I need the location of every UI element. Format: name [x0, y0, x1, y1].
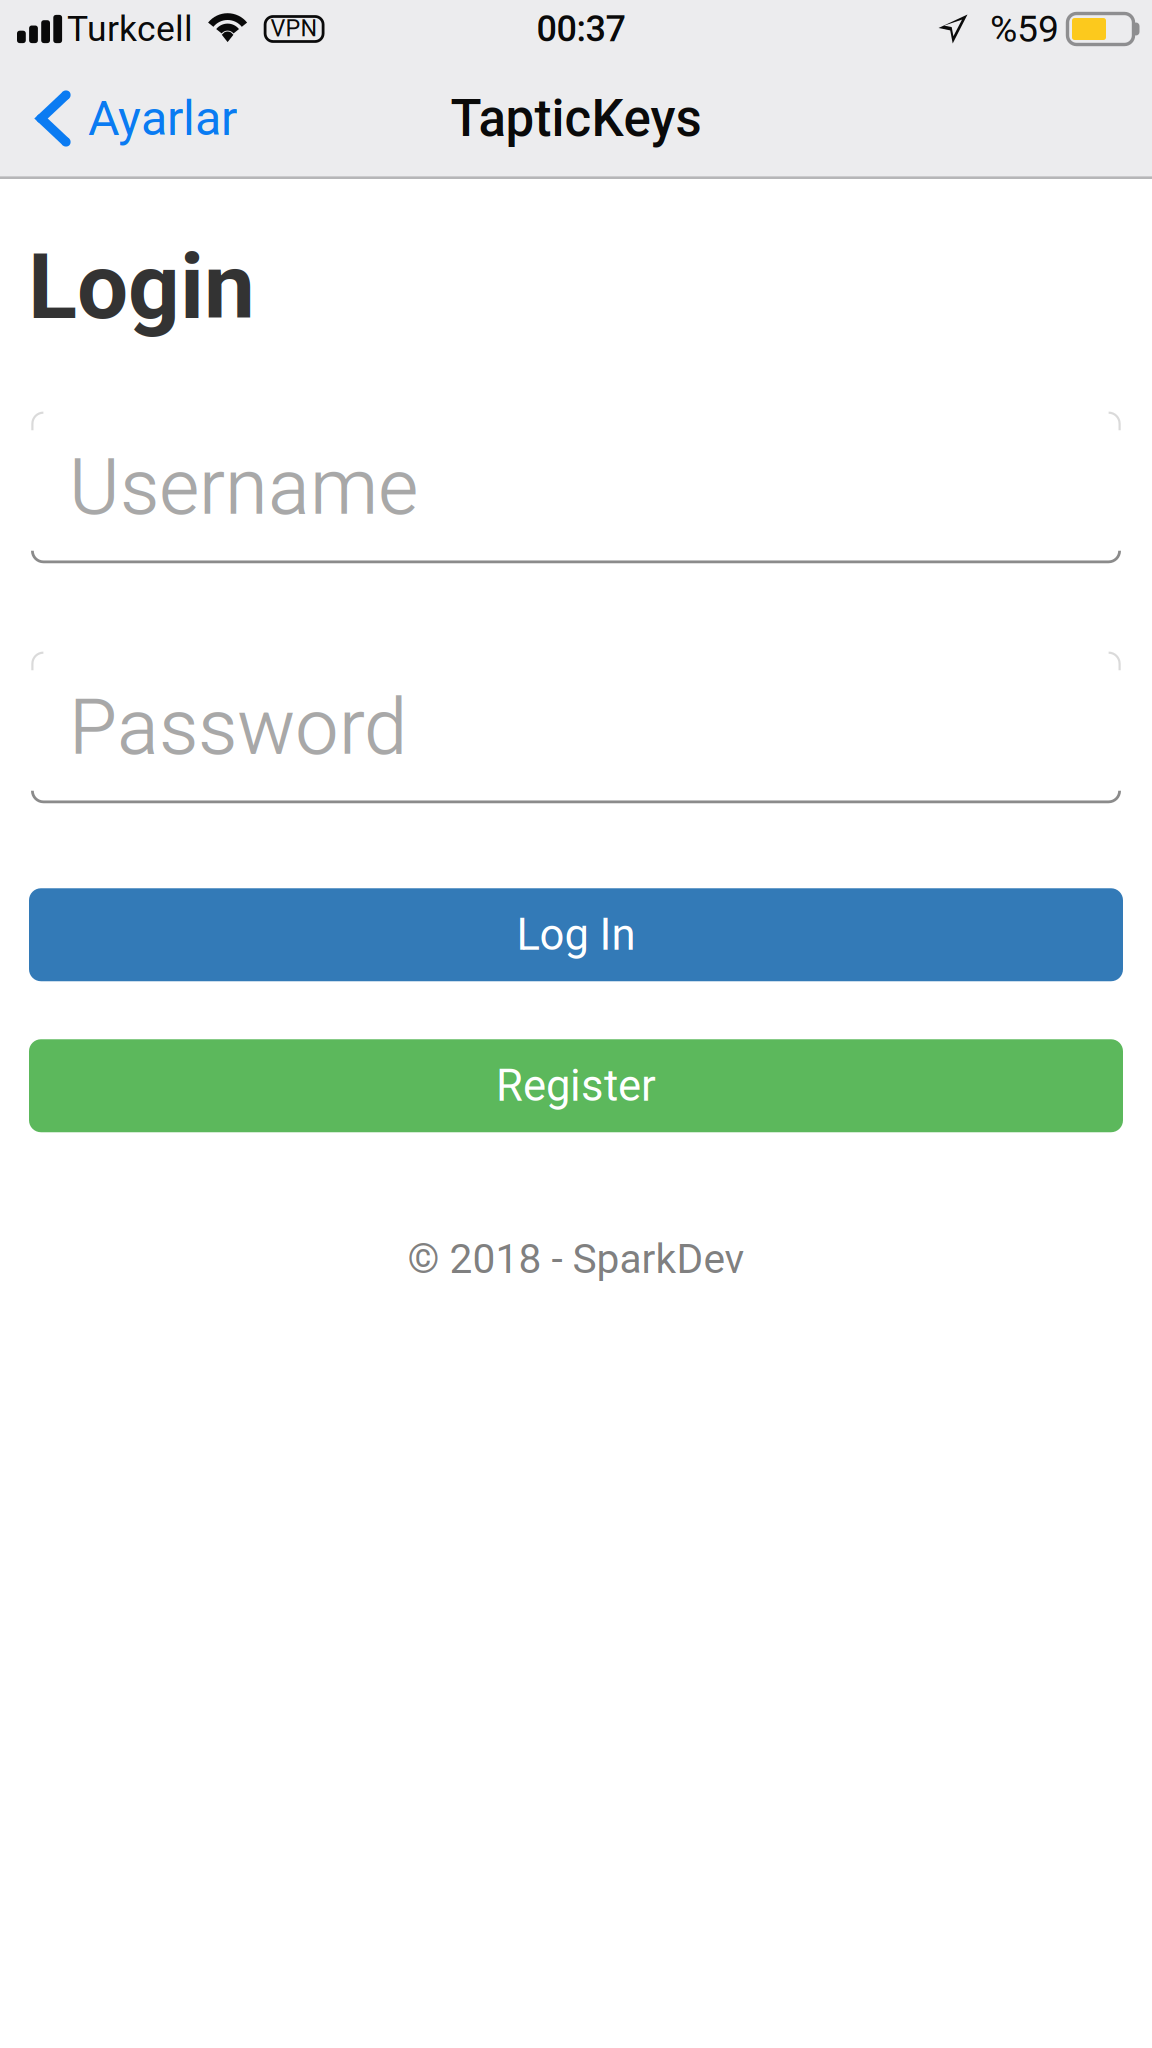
staticText: Turkcell: [67, 8, 193, 50]
staticText: %59: [990, 7, 1059, 51]
staticText: Login: [28, 234, 255, 340]
staticText: Ayarlar: [88, 90, 237, 147]
staticText: Password: [69, 682, 407, 772]
button[interactable]: Log In: [29, 888, 1123, 981]
staticText: VPN: [271, 15, 318, 42]
staticText: TapticKeys: [450, 89, 701, 148]
button[interactable]: Register: [29, 1039, 1123, 1132]
staticText: Log In: [516, 909, 635, 960]
button[interactable]: Ayarlar: [0, 58, 265, 179]
staticText: © 2018 - SparkDev: [407, 1235, 744, 1283]
staticText: 00:37: [536, 8, 625, 50]
staticText: Username: [69, 442, 418, 532]
staticText: Register: [496, 1060, 656, 1111]
